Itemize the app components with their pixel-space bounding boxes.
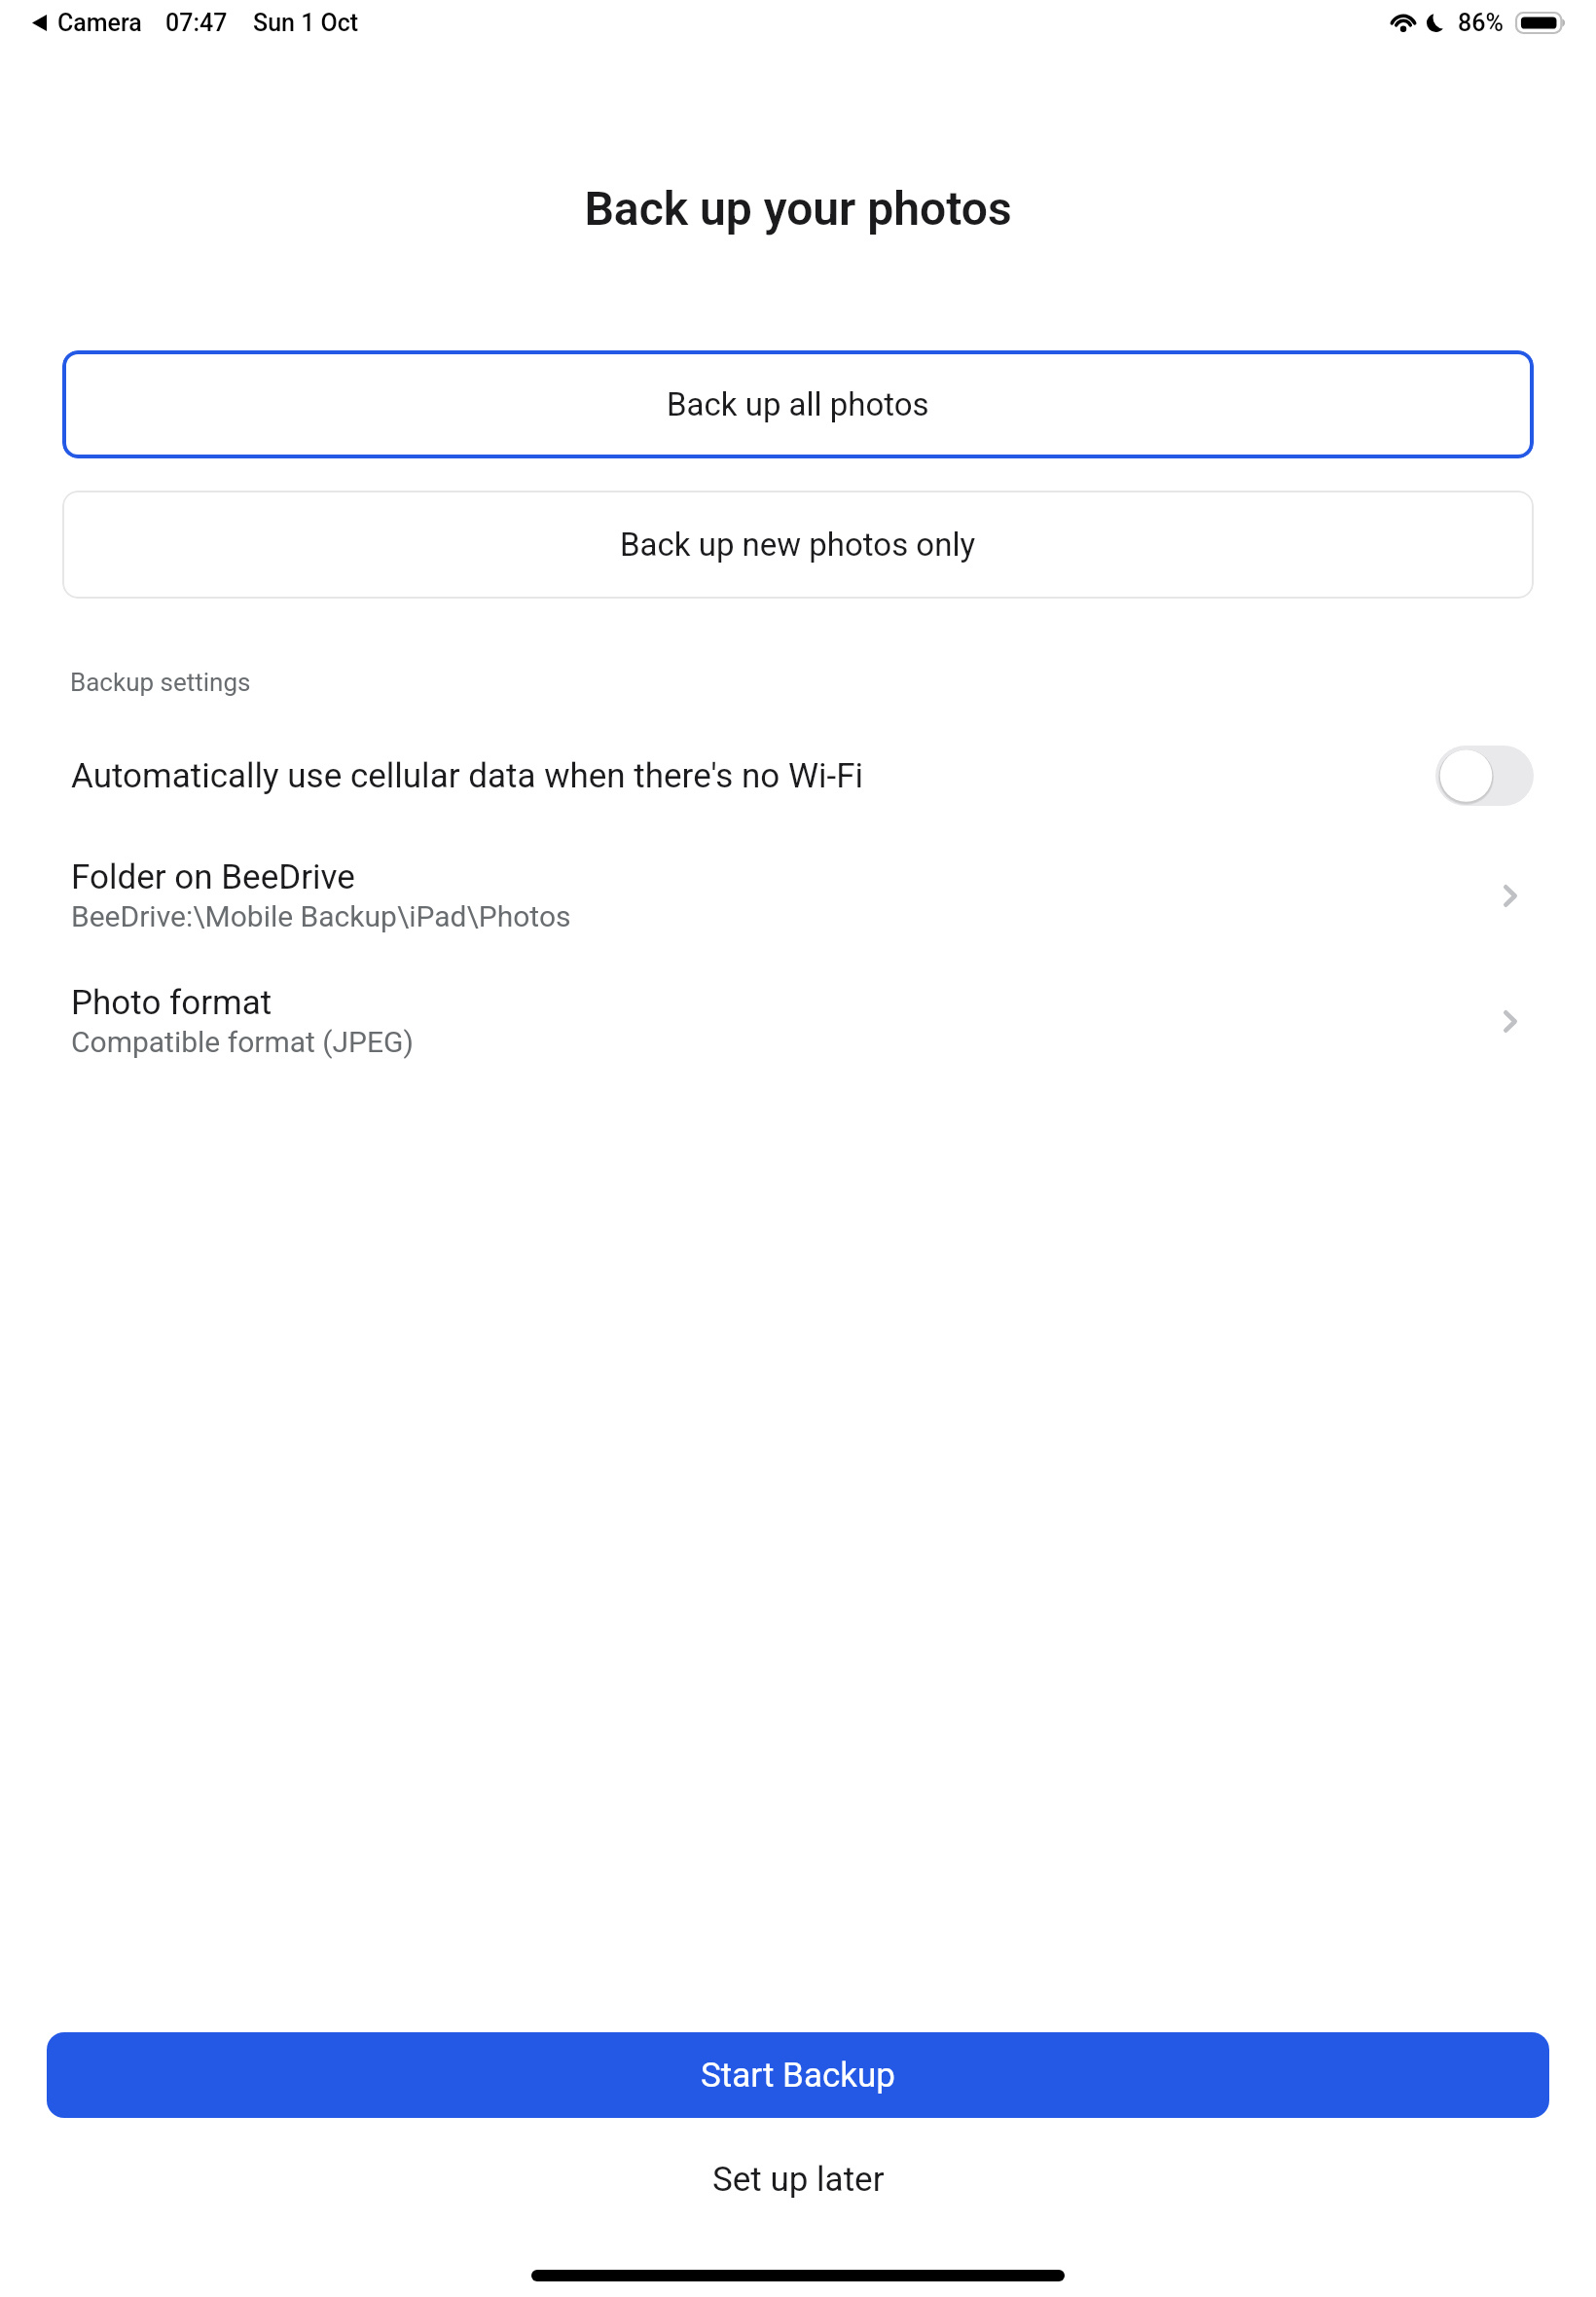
button[interactable]: Folder on BeeDrive xyxy=(0,843,1596,948)
button[interactable]: Back up all photos xyxy=(62,350,1534,458)
staticText: Compatible format (JPEG) xyxy=(71,1025,414,1059)
button[interactable]: Photo format xyxy=(0,968,1596,1074)
staticText: Backup settings xyxy=(70,668,251,697)
button[interactable]: Set up later xyxy=(0,2137,1596,2221)
staticText: Folder on BeeDrive xyxy=(71,857,355,897)
staticText: Automatically use cellular data when the… xyxy=(71,756,1435,796)
button[interactable]: Back up new photos only xyxy=(62,491,1534,599)
staticText: BeeDrive:\Mobile Backup\iPad\Photos xyxy=(71,899,571,933)
other: Battery 86 percent xyxy=(1515,12,1566,34)
other: Wi-Fi connected xyxy=(1390,14,1417,32)
button[interactable]: Start Backup xyxy=(47,2032,1549,2118)
staticText: Start Backup xyxy=(701,2056,895,2096)
staticText: Sun 1 Oct xyxy=(253,9,359,37)
other: Do not disturb xyxy=(1427,14,1445,32)
button[interactable]: Back to Camera xyxy=(0,9,359,37)
staticText: Back up all photos xyxy=(667,385,929,423)
button[interactable]: Use cellular data when no Wi-Fi xyxy=(1435,746,1534,806)
staticText: Camera xyxy=(57,9,142,37)
staticText: Set up later xyxy=(712,2160,885,2200)
staticText: 07:47 xyxy=(165,9,228,37)
staticText: Photo format xyxy=(71,983,272,1023)
staticText: 86% xyxy=(1458,9,1504,37)
button[interactable]: Automatically use cellular data when the… xyxy=(0,722,1596,829)
staticText: Back up new photos only xyxy=(620,526,976,564)
staticText: Back up your photos xyxy=(0,181,1596,236)
